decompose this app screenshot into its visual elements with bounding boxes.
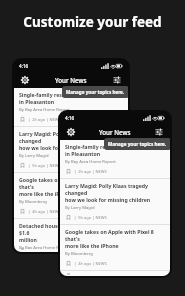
staticText: By Bay Area Home Report — [19, 245, 70, 249]
button[interactable]: Google takes on Apple with Pixel 8 that'… — [60, 225, 170, 270]
staticText: By Bloomberg — [65, 251, 93, 257]
staticText: | 2h ago | NEWS — [28, 117, 61, 122]
button[interactable]: Single-family residence sells — [60, 140, 170, 178]
button[interactable]: Detached house sells in Fremont for $1.6 — [14, 219, 128, 252]
staticText: Manage your topics here. — [66, 89, 125, 95]
staticText: By Larry Magid — [65, 205, 95, 211]
staticText: Larry Magid: Polly Klaas tragedy changed — [65, 182, 165, 196]
button[interactable]: Manage your topics here. — [62, 86, 128, 98]
staticText: more like the iPhone — [19, 190, 73, 197]
button[interactable]: Detached house sells in Fremont for $1.6 — [60, 271, 170, 276]
button[interactable]: Larry Magid: Polly Klaas tragedy changed — [60, 179, 170, 224]
staticText: | 4h ago | NEWS — [28, 209, 61, 214]
button[interactable]: Single-family residence sells — [14, 88, 128, 126]
staticText: Your News — [55, 76, 87, 84]
button[interactable]: Larry Magid: Polly Klaas tragedy changed — [14, 127, 128, 172]
button[interactable]: Settings — [19, 74, 31, 86]
staticText: | 5h ago | NEWS — [28, 163, 61, 168]
button[interactable]: Settings — [65, 126, 77, 138]
staticText: By Bay Area Home Report — [19, 107, 70, 113]
button[interactable]: Save — [65, 260, 72, 267]
staticText: 4:16 — [65, 115, 75, 121]
button[interactable]: Manage your topics here. — [104, 138, 170, 150]
staticText: Detached house sells in Fremont for $1.6 — [19, 222, 123, 236]
staticText: By Bloomberg — [19, 199, 47, 205]
staticText: Google takes on Apple with Pixel 8 that'… — [19, 176, 123, 190]
staticText: Your News — [99, 128, 131, 136]
staticText: Larry Magid: Polly Klaas tragedy changed — [19, 130, 123, 144]
button[interactable]: Save — [65, 214, 72, 221]
staticText: how we look for missing children — [19, 144, 105, 151]
button[interactable]: Google takes on Apple with Pixel 8 that'… — [14, 173, 128, 218]
staticText: 4:16 — [19, 63, 29, 69]
button[interactable]: Save — [19, 116, 26, 123]
staticText: | 5h ago | NEWS — [74, 215, 107, 220]
staticText: how we look for missing children — [65, 196, 151, 203]
staticText: | 2h ago | NEWS — [74, 169, 107, 174]
staticText: Google takes on Apple with Pixel 8 that'… — [65, 228, 165, 242]
button[interactable]: Save — [19, 208, 26, 215]
staticText: Customize your feed — [0, 13, 185, 31]
staticText: in Pleasanton — [65, 150, 101, 157]
button[interactable]: Save — [65, 168, 72, 175]
staticText: in Pleasanton — [19, 98, 55, 105]
staticText: Single-family residence sells — [19, 91, 92, 98]
staticText: By Larry Magid — [19, 153, 49, 159]
button[interactable]: Manage topics — [111, 74, 123, 86]
button[interactable]: Save — [19, 162, 26, 169]
staticText: Single-family residence sells — [65, 143, 138, 150]
button[interactable]: Manage topics — [153, 126, 165, 138]
staticText: By Bay Area Home Report — [65, 159, 116, 165]
staticText: more like the iPhone — [65, 242, 119, 249]
staticText: | 4h ago | NEWS — [74, 261, 107, 266]
staticText: Manage your topics here. — [108, 141, 167, 147]
staticText: million — [19, 236, 37, 243]
